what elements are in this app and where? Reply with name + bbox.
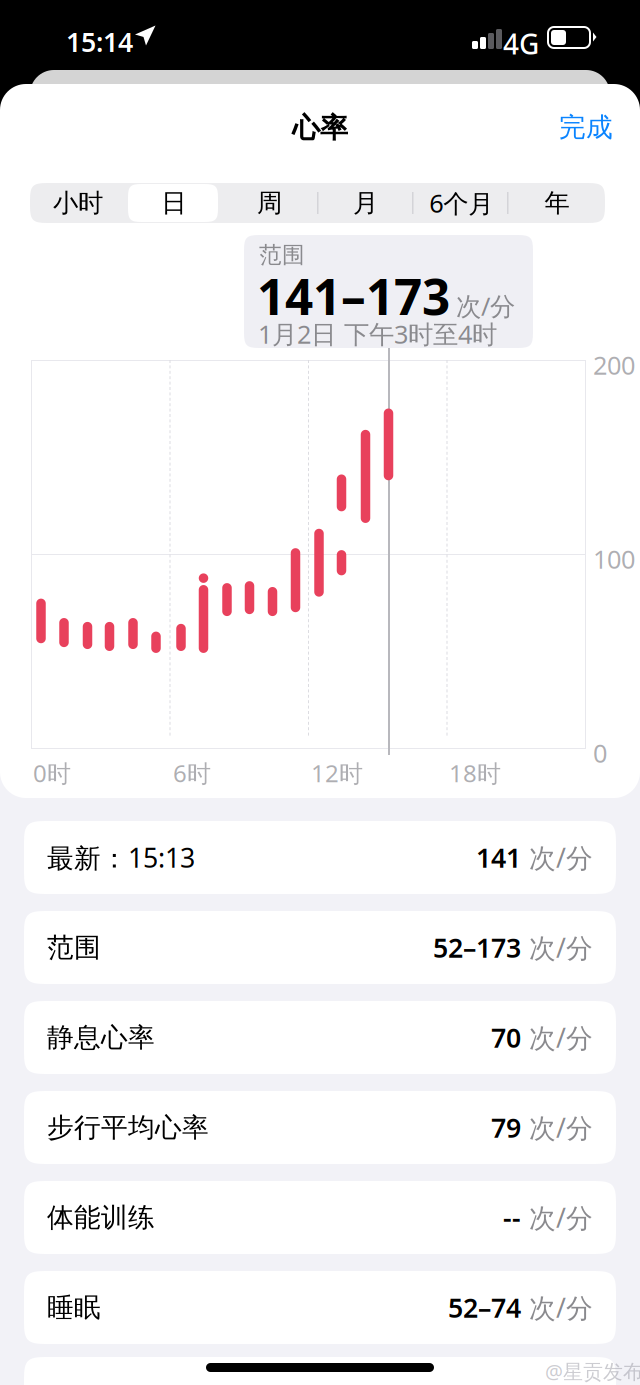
staticText: 次/分: [521, 1110, 593, 1145]
staticText: 100: [593, 542, 635, 576]
staticText: 1月2日 下午3时至4时: [258, 317, 497, 351]
button[interactable]: 年: [509, 183, 605, 223]
staticText: 18时: [449, 757, 501, 789]
button[interactable]: 步行平均心率: [24, 1091, 616, 1164]
staticText: 6个月: [429, 186, 493, 220]
button[interactable]: 月: [317, 183, 413, 223]
staticText: 体能训练: [47, 1201, 155, 1234]
button[interactable]: 日: [126, 183, 222, 223]
staticText: 141: [476, 840, 521, 875]
staticText: 次/分: [521, 1200, 593, 1235]
button[interactable]: 周: [222, 183, 317, 223]
staticText: 6时: [173, 757, 211, 789]
staticText: 141–173: [257, 263, 450, 328]
staticText: 周: [257, 187, 282, 218]
staticText: 完成: [559, 111, 613, 144]
staticText: 步行平均心率: [47, 1111, 209, 1144]
staticText: 15:14: [66, 24, 133, 59]
button[interactable]: 睡眠: [24, 1271, 616, 1344]
staticText: 次/分: [521, 930, 593, 965]
staticText: 70: [491, 1020, 521, 1055]
staticText: 次/分: [521, 840, 593, 875]
staticText: 睡眠: [47, 1291, 101, 1324]
button[interactable]: 体能训练: [24, 1181, 616, 1254]
staticText: 心率: [292, 111, 348, 145]
staticText: 52–173: [433, 930, 521, 965]
staticText: 范围: [259, 241, 305, 269]
staticText: 最新：15:13: [47, 840, 195, 875]
staticText: --: [503, 1200, 521, 1235]
staticText: 200: [593, 348, 635, 382]
staticText: 小时: [53, 187, 103, 218]
staticText: 年: [544, 187, 569, 218]
button[interactable]: 6个月: [413, 183, 509, 223]
staticText: 静息心率: [47, 1021, 155, 1054]
staticText: 次/分: [521, 1290, 593, 1325]
button[interactable]: 完成: [541, 99, 631, 156]
staticText: 范围: [47, 931, 101, 964]
button[interactable]: 最新：15:13: [24, 821, 616, 894]
staticText: 79: [491, 1110, 521, 1145]
staticText: 0: [593, 736, 607, 770]
staticText: 月: [353, 187, 378, 218]
staticText: 0时: [33, 757, 71, 789]
button[interactable]: 小时: [30, 183, 126, 223]
staticText: 12时: [311, 757, 363, 789]
staticText: 次/分: [456, 289, 515, 323]
staticText: 52–74: [448, 1290, 521, 1325]
button[interactable]: 静息心率: [24, 1001, 616, 1074]
staticText: 次/分: [521, 1020, 593, 1055]
staticText: 日: [161, 187, 186, 218]
staticText: @星贡发布: [545, 1358, 640, 1385]
staticText: 4G: [503, 25, 539, 62]
button[interactable]: 范围: [24, 911, 616, 984]
